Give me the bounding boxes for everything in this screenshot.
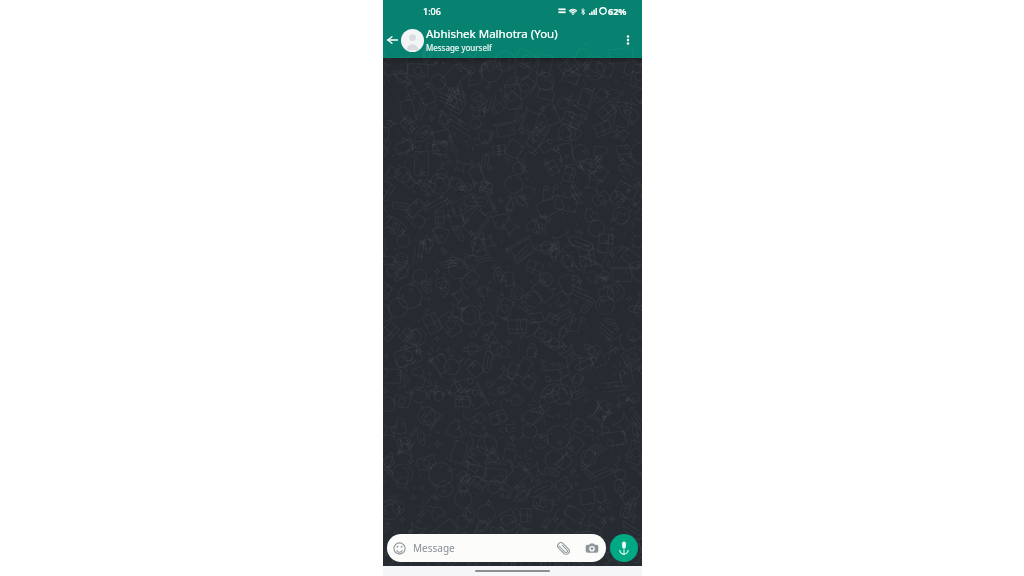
button[interactable]: Attach <box>556 541 571 556</box>
button[interactable]: Emoji <box>393 542 406 555</box>
button[interactable]: Profile photo <box>401 29 424 52</box>
staticText: 1:06 <box>423 5 441 17</box>
staticText: 62% <box>608 5 627 17</box>
button[interactable]: Abhishek Malhotra (You) <box>426 22 618 58</box>
button[interactable]: Camera <box>585 541 599 555</box>
button[interactable]: Back <box>384 32 400 48</box>
staticText: Abhishek Malhotra (You) <box>426 26 558 42</box>
button[interactable]: Emoji <box>387 534 606 562</box>
staticText: Message yourself <box>426 42 492 53</box>
button[interactable]: Voice message <box>610 534 638 562</box>
button[interactable]: More options <box>618 30 638 50</box>
staticText: Message <box>413 541 455 555</box>
